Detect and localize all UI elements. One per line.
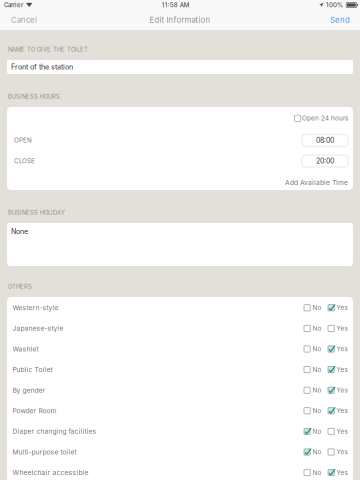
button[interactable]: Yes	[328, 345, 348, 353]
button[interactable]: By gender	[7, 380, 353, 400]
button[interactable]: Yes	[328, 386, 348, 394]
staticText: No	[312, 366, 321, 373]
staticText: OPEN	[14, 136, 32, 144]
button[interactable]: Powder Room	[7, 400, 353, 421]
staticText: Yes	[336, 448, 347, 456]
staticText: By gender	[12, 386, 45, 394]
staticText: OTHERS	[8, 283, 32, 290]
button[interactable]: Yes	[328, 304, 348, 312]
staticText: No	[312, 386, 321, 394]
button[interactable]: Western-style	[7, 297, 353, 318]
button[interactable]: 08:00	[302, 134, 348, 146]
staticText: Yes	[336, 407, 347, 415]
button[interactable]: No	[304, 325, 324, 332]
staticText: Edit Information	[149, 15, 210, 25]
button[interactable]: Cancel	[0, 10, 45, 30]
staticText: Multi-purpose toilet	[12, 448, 76, 456]
button[interactable]: Public Toilet	[7, 359, 353, 380]
button[interactable]: No	[304, 469, 324, 476]
staticText: Wheelchair accessible	[12, 469, 88, 477]
staticText: Yes	[336, 366, 347, 373]
staticText: Yes	[336, 345, 347, 353]
staticText: CLOSE	[14, 157, 35, 165]
staticText: 100%	[326, 1, 343, 9]
button[interactable]: Washlet	[7, 339, 353, 359]
button[interactable]: Front of the station	[0, 60, 360, 74]
button[interactable]: Yes	[328, 428, 348, 435]
staticText: NAME TO GIVE THE TOILET	[8, 46, 88, 53]
button[interactable]: Send	[322, 10, 360, 30]
button[interactable]: Yes	[328, 407, 348, 415]
staticText: Carrier	[4, 1, 23, 9]
button[interactable]: No	[304, 345, 324, 353]
button[interactable]: Multi-purpose toilet	[7, 442, 353, 462]
staticText: Western-style	[12, 304, 58, 312]
button[interactable]: Yes	[328, 366, 348, 373]
button[interactable]: 20:00	[302, 155, 348, 167]
button[interactable]: Yes	[328, 469, 348, 476]
staticText: Add Available Time	[285, 179, 348, 187]
staticText: None	[11, 227, 28, 236]
staticText: No	[312, 407, 321, 415]
button[interactable]: Japanese-style	[7, 318, 353, 339]
button[interactable]: Add Available Time	[285, 179, 348, 187]
staticText: Public Toilet	[12, 366, 52, 374]
button[interactable]: Yes	[328, 448, 348, 456]
staticText: Yes	[336, 304, 347, 312]
staticText: No	[312, 304, 321, 312]
button[interactable]: Open 24 hours	[295, 114, 348, 122]
button[interactable]: No	[304, 304, 324, 312]
staticText: No	[312, 325, 321, 332]
staticText: Yes	[336, 325, 347, 332]
button[interactable]: No	[304, 366, 324, 373]
staticText: Open 24 hours	[302, 114, 348, 122]
staticText: Japanese-style	[12, 324, 63, 332]
staticText: BUSINESS HOLIDAY	[8, 209, 65, 216]
button[interactable]: No	[304, 386, 324, 394]
staticText: Yes	[336, 428, 347, 435]
staticText: Washlet	[12, 345, 38, 353]
staticText: Front of the station	[11, 63, 73, 71]
staticText: No	[312, 428, 321, 435]
staticText: No	[312, 345, 321, 353]
staticText: 08:00	[316, 136, 334, 144]
staticText: Yes	[336, 386, 347, 394]
staticText: No	[312, 448, 321, 456]
staticText: 20:00	[316, 157, 334, 165]
button[interactable]: No	[304, 407, 324, 415]
staticText: Powder Room	[12, 407, 56, 415]
staticText: Diaper changing facilities	[12, 427, 96, 435]
button[interactable]: Diaper changing facilities	[7, 421, 353, 442]
staticText: Send	[330, 15, 350, 25]
staticText: No	[312, 469, 321, 476]
staticText: Yes	[336, 469, 347, 476]
staticText: 11:58 AM	[162, 1, 190, 9]
button[interactable]: Wheelchair accessible	[7, 462, 353, 480]
button[interactable]: No	[304, 448, 324, 456]
staticText: BUSINESS HOURS	[8, 93, 60, 100]
staticText: Cancel	[11, 15, 37, 25]
button[interactable]: None	[0, 223, 360, 266]
button[interactable]: Yes	[328, 325, 348, 332]
button[interactable]: No	[304, 428, 324, 435]
